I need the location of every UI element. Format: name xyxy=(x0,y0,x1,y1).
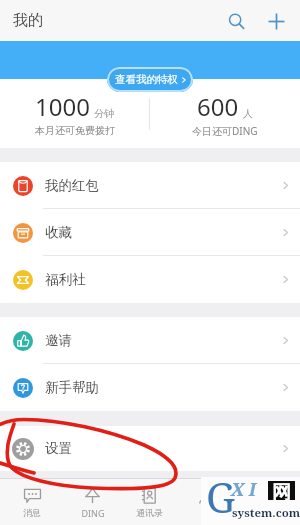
staticText: 分钟 xyxy=(94,107,114,120)
button[interactable]: 福利社 xyxy=(0,256,300,303)
button[interactable]: 邀请 xyxy=(0,317,300,364)
button[interactable]: 1000 xyxy=(0,79,149,148)
button[interactable]: 我的红包 xyxy=(0,162,300,209)
staticText: 邀请 xyxy=(45,332,72,349)
staticText: 设置 xyxy=(45,440,72,457)
staticText: X I xyxy=(231,477,257,502)
staticText: 本月还可免费拨打 xyxy=(35,124,115,137)
staticText: DING xyxy=(81,507,105,519)
staticText: 600 xyxy=(197,90,239,123)
staticText: 我的 xyxy=(13,11,43,30)
button[interactable]: 消息 xyxy=(0,479,64,525)
button[interactable]: 新手帮助 xyxy=(0,364,300,411)
button[interactable]: Add xyxy=(256,1,296,41)
staticText: 人 xyxy=(243,107,253,120)
staticText: 新手帮助 xyxy=(45,379,99,396)
staticText: 网 xyxy=(272,481,291,500)
staticText: G xyxy=(206,469,236,517)
staticText: 消息 xyxy=(23,507,41,518)
button[interactable]: 600 xyxy=(150,79,300,148)
button[interactable]: 通讯录 xyxy=(121,479,178,525)
button[interactable]: 查看我的特权 xyxy=(107,67,193,92)
button[interactable]: DING xyxy=(64,479,121,525)
staticText: 通讯录 xyxy=(136,507,163,518)
staticText: 收藏 xyxy=(45,224,72,241)
staticText: 我的红包 xyxy=(45,177,99,194)
staticText: 1000 xyxy=(35,90,90,123)
button[interactable]: Search xyxy=(216,1,256,41)
button[interactable]: 我 xyxy=(178,479,235,525)
button[interactable]: 设置 xyxy=(0,426,300,471)
staticText: 今日还可DING xyxy=(192,124,258,138)
staticText: system.com xyxy=(232,505,300,521)
staticText: 我 xyxy=(202,507,211,518)
staticText: 福利社 xyxy=(45,271,86,288)
staticText: 查看我的特权 xyxy=(115,73,178,86)
button[interactable]: 收藏 xyxy=(0,209,300,256)
